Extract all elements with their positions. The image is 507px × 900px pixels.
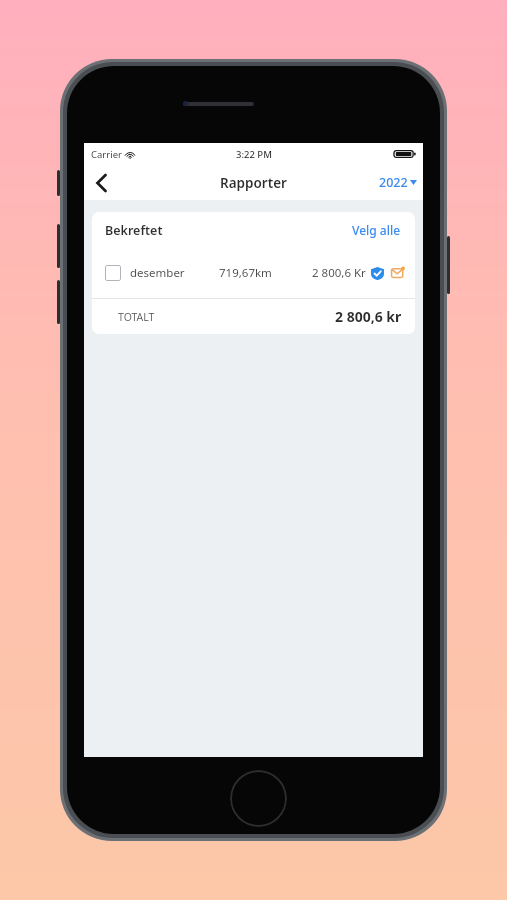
button[interactable]: Back	[84, 166, 118, 200]
staticText: 719,67km	[219, 265, 272, 281]
staticText: desember	[130, 265, 185, 281]
staticText: Bekreftet	[105, 222, 163, 239]
staticText: 2 800,6 kr	[335, 307, 402, 326]
staticText: 2 800,6 Kr	[312, 265, 366, 281]
staticText: Rapporter	[220, 174, 287, 192]
button[interactable]: Send report	[391, 266, 405, 280]
button[interactable]: Velg alle	[348, 217, 405, 243]
button[interactable]: Select desember	[92, 248, 415, 298]
staticText: TOTALT	[118, 310, 155, 324]
button[interactable]: Select desember	[105, 265, 121, 281]
button[interactable]: 2022	[373, 169, 423, 196]
button[interactable]: Verified	[371, 267, 384, 280]
staticText: Carrier	[91, 148, 122, 161]
staticText: 3:22 PM	[236, 148, 272, 161]
staticText: Velg alle	[352, 222, 401, 238]
staticText: 2022	[379, 174, 408, 191]
